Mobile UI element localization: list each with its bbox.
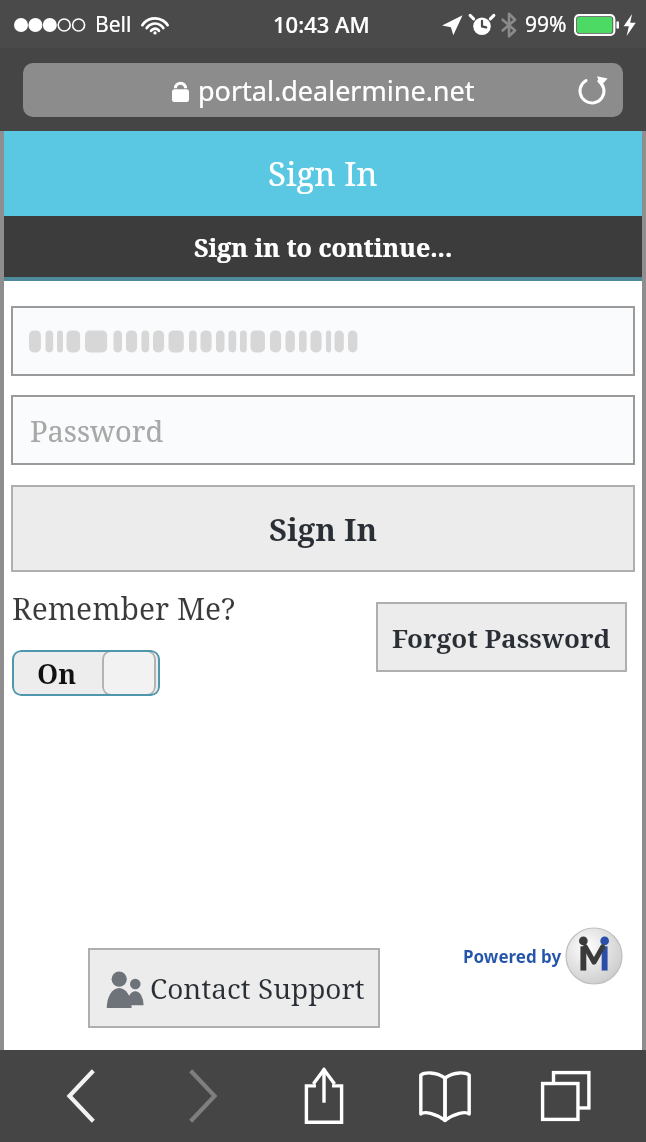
button[interactable]: Contact Support bbox=[88, 948, 380, 1028]
staticText: 10:43 AM bbox=[273, 9, 370, 39]
button[interactable]: Forgot Password bbox=[376, 602, 627, 672]
button[interactable]: Sign In bbox=[11, 485, 635, 572]
button[interactable]: Share bbox=[263, 1050, 384, 1142]
staticText: Contact Support bbox=[150, 969, 365, 1007]
staticText: Powered by bbox=[463, 945, 562, 968]
button[interactable]: Remember Me toggle, On bbox=[12, 650, 160, 696]
staticText: Bell bbox=[95, 10, 132, 39]
button[interactable]: Bookmarks bbox=[384, 1050, 505, 1142]
button[interactable]: Forward bbox=[142, 1050, 263, 1142]
staticText: Password bbox=[30, 411, 164, 450]
staticText: Remember Me? bbox=[12, 588, 236, 629]
staticText: Sign in to continue... bbox=[194, 230, 453, 264]
button[interactable]: Address bar bbox=[23, 63, 623, 117]
staticText: 99% bbox=[525, 10, 567, 39]
button[interactable]: Back bbox=[20, 1050, 142, 1142]
button[interactable]: Reload bbox=[575, 73, 609, 107]
staticText: On bbox=[37, 655, 77, 692]
staticText: portal.dealermine.net bbox=[198, 72, 475, 109]
staticText: Sign In bbox=[268, 151, 378, 196]
button[interactable]: Password bbox=[11, 395, 635, 465]
staticText: Sign In bbox=[269, 508, 378, 550]
button[interactable]: Tabs bbox=[505, 1050, 626, 1142]
staticText: Forgot Password bbox=[392, 620, 611, 655]
button[interactable] bbox=[11, 306, 635, 376]
